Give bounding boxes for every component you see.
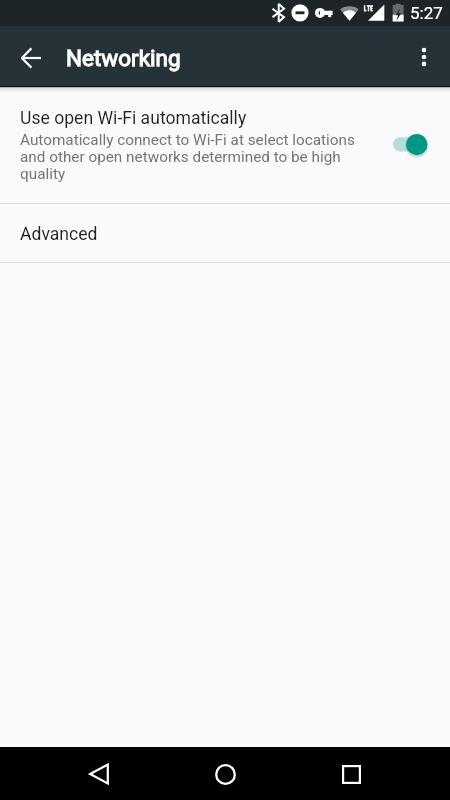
button[interactable]: Home [201, 750, 249, 798]
button[interactable]: Use open Wi-Fi automatically [0, 86, 450, 203]
button[interactable]: Recent apps [327, 750, 375, 798]
staticText: Advanced [20, 224, 98, 245]
staticText: Automatically connect to Wi-Fi at select… [20, 131, 360, 183]
button[interactable]: Use open Wi-Fi automatically, on [385, 120, 431, 156]
staticText: Networking [66, 45, 181, 71]
staticText: 5:27 [410, 3, 443, 23]
staticText: Use open Wi-Fi automatically [20, 108, 247, 129]
button[interactable]: Back [75, 750, 123, 798]
button[interactable]: More options [404, 37, 444, 77]
button[interactable]: Navigate up [11, 38, 51, 78]
button[interactable]: Advanced [0, 204, 450, 262]
